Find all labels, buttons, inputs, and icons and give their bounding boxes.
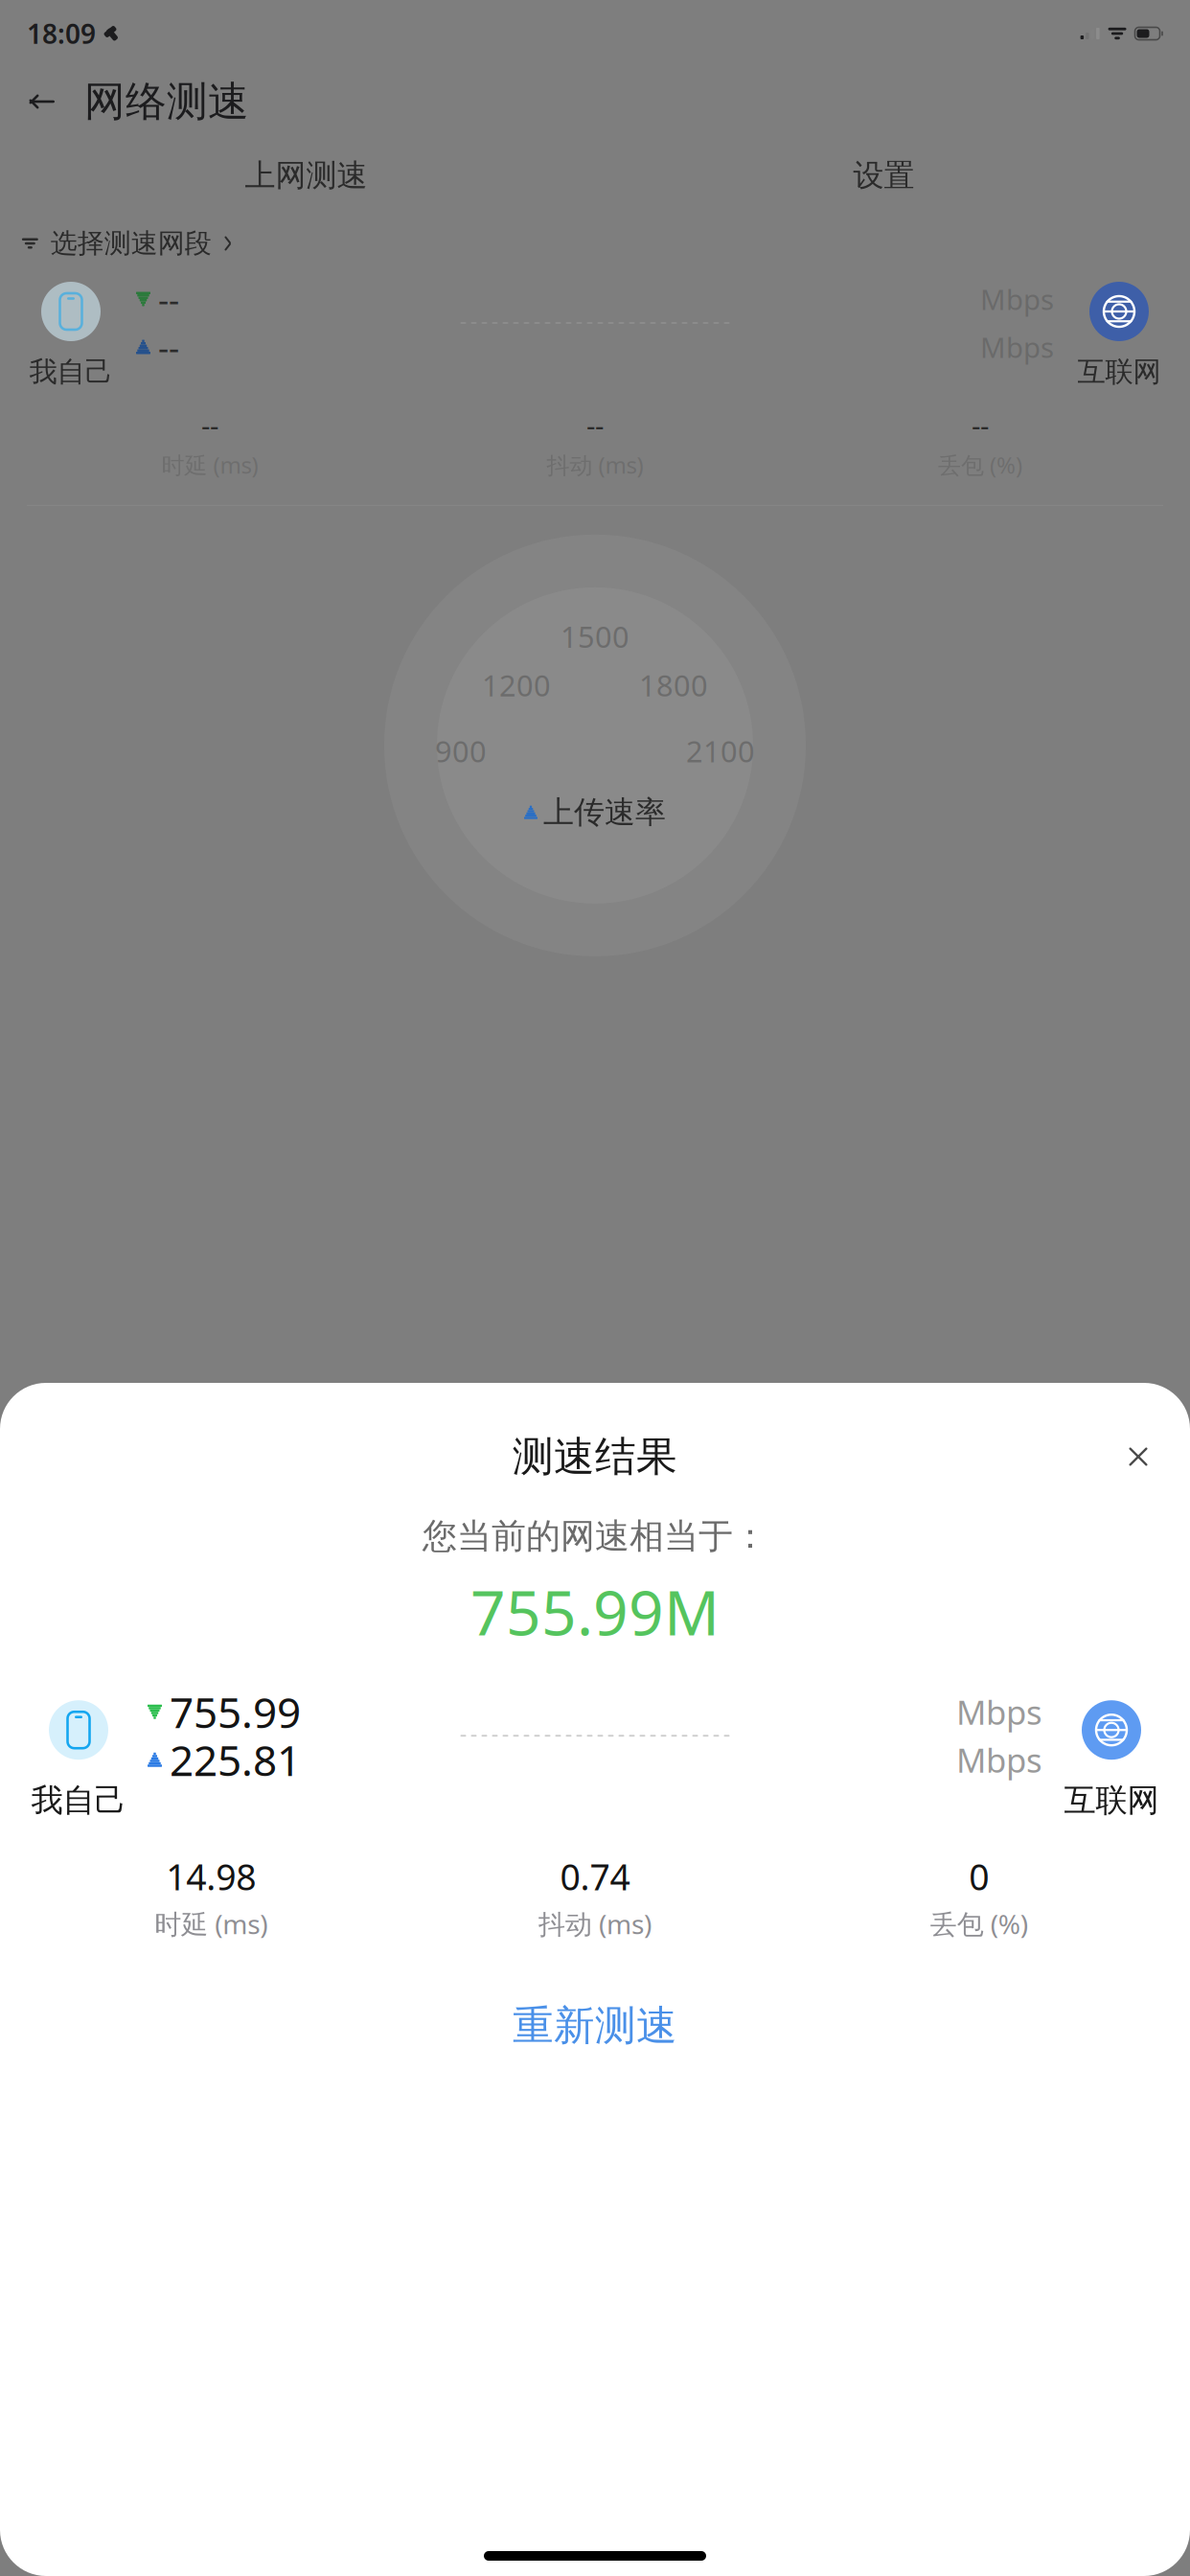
- staticText: 抖动 (ms): [547, 449, 643, 480]
- staticText: Mbps: [980, 328, 1054, 366]
- staticText: 900: [435, 731, 487, 770]
- staticText: 上网测速: [245, 156, 367, 194]
- staticText: 225.81: [170, 1732, 301, 1788]
- staticText: 丢包 (%): [930, 1906, 1028, 1941]
- staticText: 上传速率: [543, 793, 666, 831]
- staticText: --: [586, 406, 604, 444]
- button[interactable]: Close: [1111, 1430, 1165, 1483]
- staticText: 选择测速网段: [50, 227, 211, 260]
- staticText: 网络测速: [84, 76, 249, 127]
- staticText: --: [158, 277, 179, 321]
- staticText: Mbps: [980, 280, 1054, 318]
- staticText: 我自己: [31, 1781, 126, 1820]
- staticText: 丢包 (%): [938, 449, 1022, 480]
- staticText: 时延 (ms): [155, 1906, 268, 1941]
- staticText: Mbps: [956, 1738, 1042, 1782]
- button[interactable]: 上网测速: [17, 153, 595, 197]
- staticText: 18:09: [27, 16, 96, 51]
- staticText: 0.74: [560, 1853, 630, 1900]
- staticText: 抖动 (ms): [538, 1906, 652, 1941]
- staticText: 重新测速: [513, 2001, 677, 2051]
- staticText: 互联网: [1064, 1781, 1159, 1820]
- staticText: 互联网: [1077, 355, 1161, 389]
- button[interactable]: 设置: [595, 153, 1173, 197]
- staticText: 测速结果: [513, 1432, 677, 1482]
- button[interactable]: 重新测速: [23, 1991, 1167, 2060]
- staticText: --: [972, 406, 989, 444]
- staticText: --: [201, 406, 218, 444]
- staticText: 755.99M: [470, 1571, 720, 1652]
- staticText: 您当前的网速相当于：: [423, 1515, 767, 1557]
- button[interactable]: Back: [21, 80, 63, 123]
- staticText: Mbps: [956, 1690, 1042, 1734]
- staticText: 设置: [853, 156, 915, 194]
- staticText: 1800: [639, 666, 708, 705]
- staticText: 1500: [561, 617, 629, 656]
- staticText: 1200: [482, 666, 551, 705]
- staticText: 14.98: [166, 1853, 256, 1900]
- button[interactable]: 选择测速网段: [0, 220, 1190, 266]
- staticText: 0: [969, 1853, 989, 1900]
- staticText: 我自己: [29, 355, 113, 389]
- staticText: 时延 (ms): [161, 449, 258, 480]
- staticText: 2100: [686, 731, 755, 770]
- staticText: --: [158, 325, 179, 369]
- staticText: 755.99: [170, 1684, 301, 1740]
